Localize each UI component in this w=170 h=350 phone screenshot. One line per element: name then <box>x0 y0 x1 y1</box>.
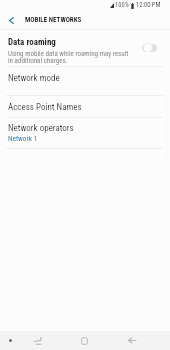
staticText: MOBILE NETWORKS <box>25 16 82 24</box>
button[interactable]: Show keyboard <box>0 331 21 350</box>
staticText: Network 1 <box>8 134 38 143</box>
button[interactable]: Navigate up <box>2 11 21 29</box>
button[interactable]: Network mode <box>0 66 170 95</box>
staticText: 100% <box>115 1 129 9</box>
staticText: 12:00 PM <box>136 1 161 9</box>
staticText: Network mode <box>8 73 60 84</box>
staticText: Data roaming <box>8 37 56 48</box>
button[interactable]: Hide keyboard <box>26 331 48 350</box>
staticText: Using mobile data while roaming may resu… <box>8 50 129 65</box>
button[interactable]: Access Point Names <box>0 95 170 117</box>
staticText: Access Point Names <box>8 102 82 113</box>
staticText: Network operators <box>8 123 74 134</box>
button[interactable]: Back <box>121 331 143 350</box>
button[interactable]: Network operators <box>0 117 170 148</box>
button[interactable]: Recent apps <box>73 331 95 350</box>
button[interactable]: Data roaming switch <box>142 42 157 53</box>
button[interactable]: Data roaming <box>0 29 170 66</box>
